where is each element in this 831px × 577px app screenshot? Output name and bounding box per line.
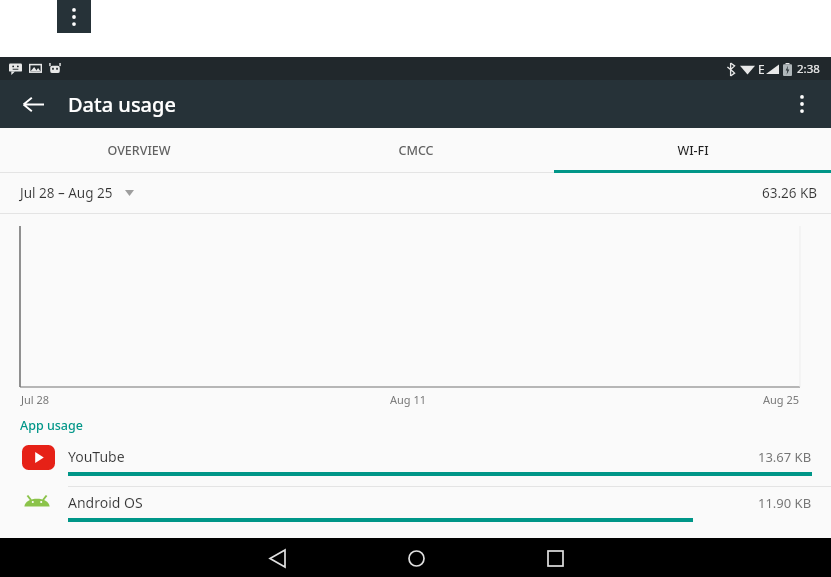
button[interactable]: More options [786, 88, 818, 120]
staticText: Jul 28 – Aug 25 [20, 184, 113, 202]
button[interactable]: Android OS [0, 487, 831, 532]
button[interactable]: CMCC [277, 128, 554, 173]
button[interactable]: Recent apps [539, 542, 571, 574]
staticText: App usage [20, 417, 83, 434]
staticText: 2:38 [797, 61, 820, 77]
staticText: Android OS [68, 493, 143, 512]
button[interactable]: More options [57, 0, 91, 33]
staticText: WI-FI [677, 142, 709, 159]
button[interactable]: Home [400, 542, 432, 574]
staticText: 11.90 KB [758, 494, 812, 512]
staticText: Aug 25 [763, 392, 800, 407]
staticText: 63.26 KB [762, 184, 818, 202]
button[interactable]: Jul 28 – Aug 25 [20, 184, 134, 202]
staticText: E [758, 61, 765, 77]
button[interactable]: YouTube [0, 441, 831, 486]
staticText: Aug 11 [390, 392, 427, 407]
button[interactable]: Back [261, 542, 293, 574]
staticText: Data usage [68, 91, 176, 118]
staticText: OVERVIEW [107, 142, 171, 159]
button[interactable]: WI-FI [554, 128, 831, 173]
staticText: YouTube [68, 447, 125, 466]
button[interactable]: OVERVIEW [0, 128, 277, 173]
button[interactable]: Back [17, 88, 49, 120]
staticText: Jul 28 [21, 392, 50, 407]
staticText: CMCC [398, 142, 434, 159]
staticText: 13.67 KB [758, 448, 812, 466]
